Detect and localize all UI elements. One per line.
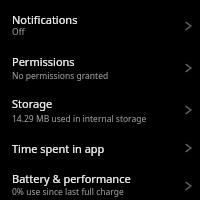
button[interactable]: Notifications [0,5,200,46]
staticText: Off [12,26,25,38]
staticText: Notifications [12,12,78,27]
staticText: Storage [12,96,53,111]
staticText: Time spent in app [12,141,105,156]
staticText: 14.29 MB used in internal storage [12,113,147,125]
staticText: Battery & performance [12,171,131,186]
button[interactable]: Time spent in app [0,134,200,162]
staticText: Permissions [12,54,75,69]
button[interactable]: Storage [0,90,200,130]
staticText: 0% use since last full charge [12,186,124,198]
button[interactable]: Battery & performance [0,166,200,200]
staticText: No permissions granted [12,70,109,82]
button[interactable]: Permissions [0,48,200,87]
